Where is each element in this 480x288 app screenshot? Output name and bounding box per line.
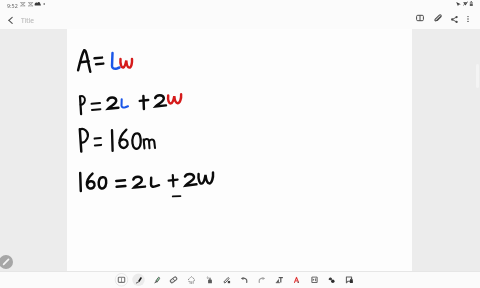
button[interactable]: Select object [201,272,218,288]
button[interactable]: Highlighter [148,272,165,288]
button[interactable]: Lasso select [183,272,200,288]
button[interactable]: Title [19,12,36,28]
button[interactable]: Eraser [165,272,182,288]
button[interactable]: Text style [288,272,305,288]
button[interactable]: Pen [130,272,147,288]
button[interactable]: More options [459,11,476,27]
button[interactable]: Back [2,12,20,28]
button[interactable]: Note panel [113,272,130,288]
button[interactable]: Ink to shape [323,272,340,288]
button[interactable]: Share [446,11,463,27]
button[interactable]: Pages [411,10,428,26]
button[interactable]: Insert [306,272,323,288]
staticText: 9:52 [7,2,18,9]
button[interactable]: Read only [341,272,358,288]
button[interactable]: Redo [253,272,270,288]
button[interactable]: Undo [236,272,253,288]
button[interactable]: Text box [271,272,288,288]
button[interactable]: Add pen [218,272,235,288]
staticText: Title [21,16,34,25]
button[interactable]: Attach [429,10,446,26]
button[interactable]: Pen settings [0,255,13,269]
